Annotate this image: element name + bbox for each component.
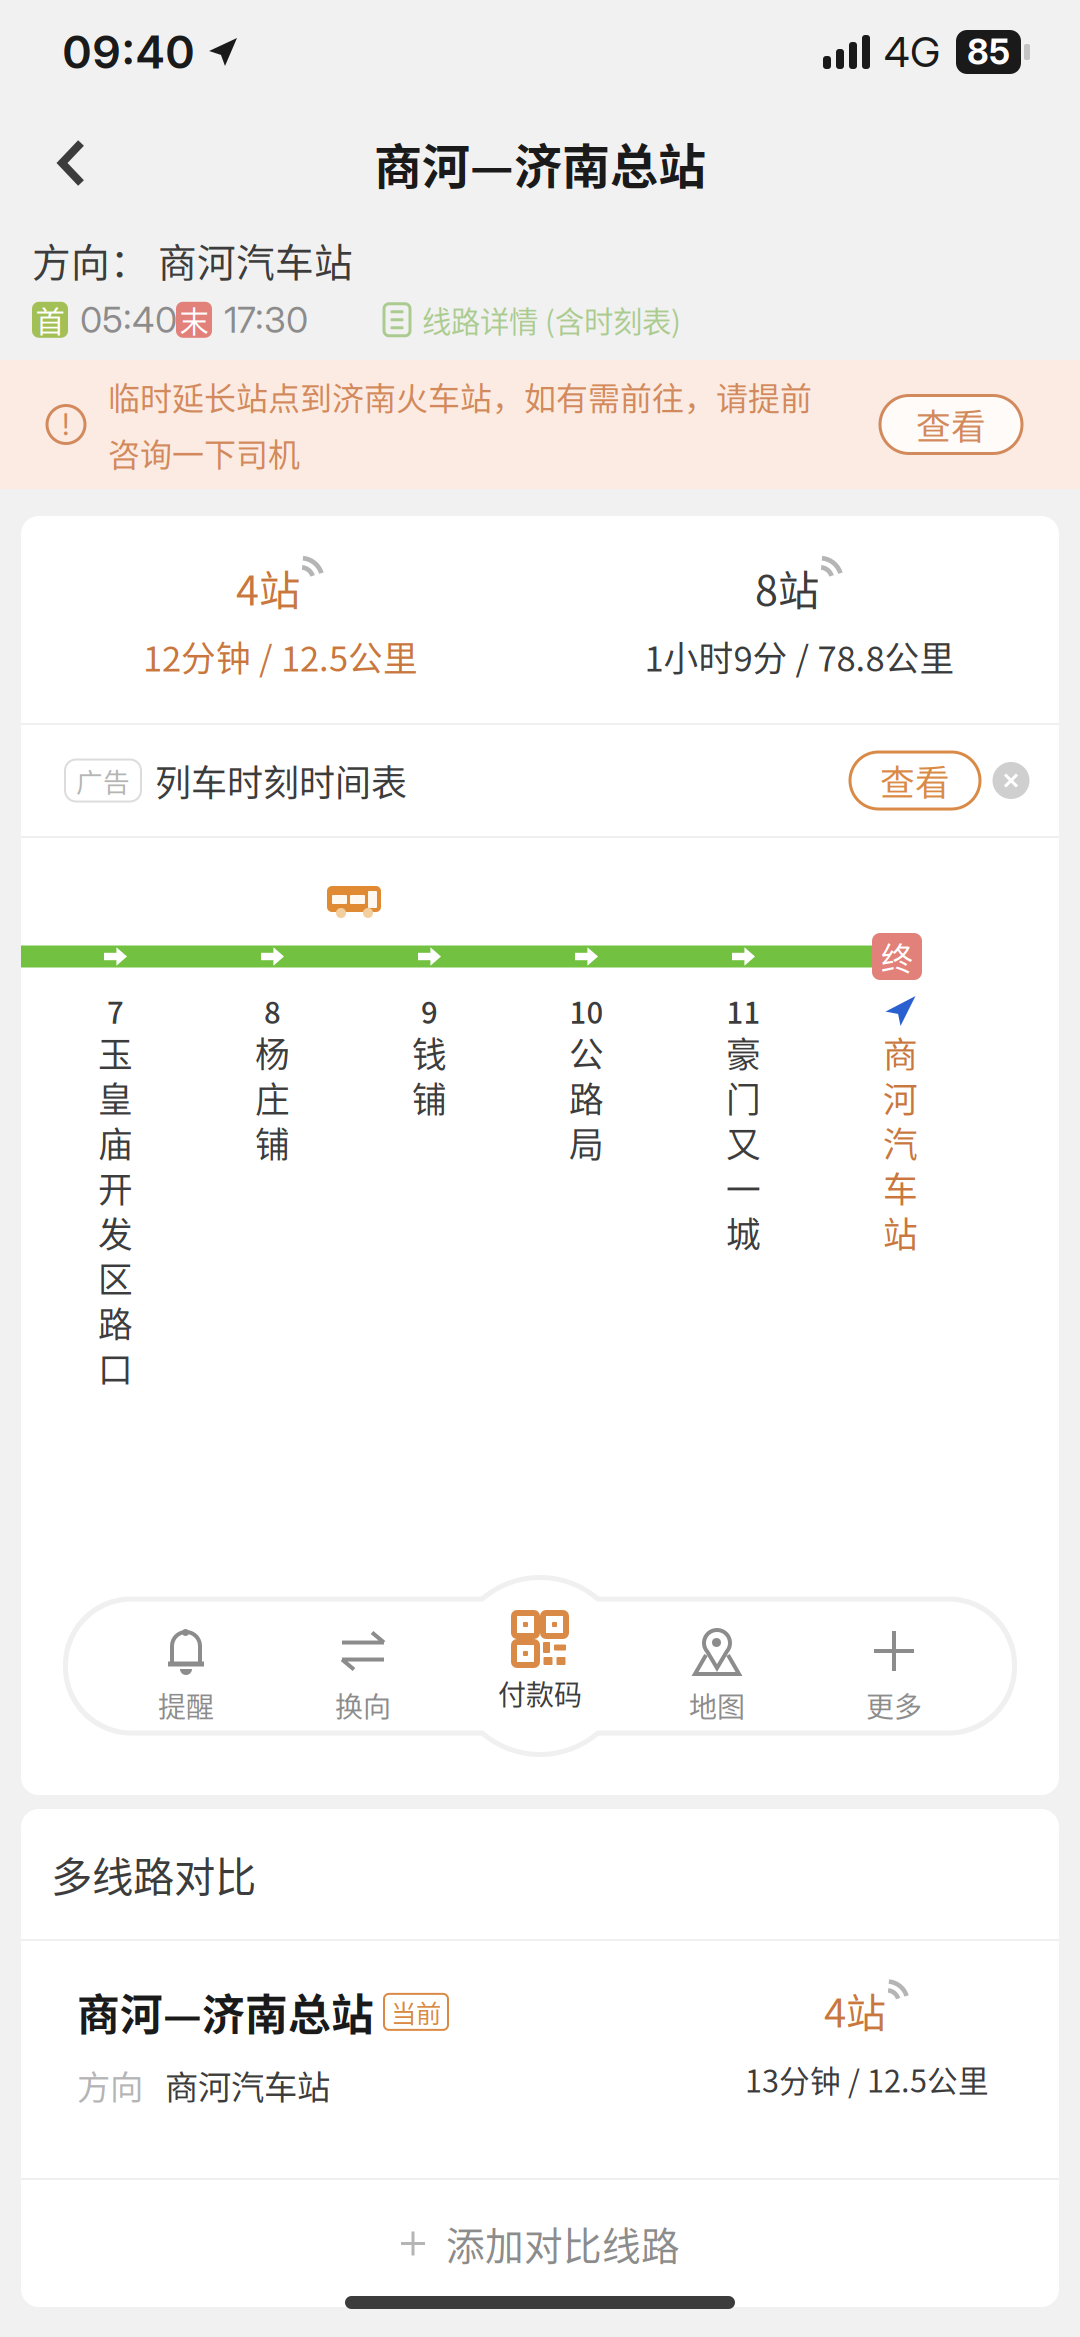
button[interactable]: 付款码: [451, 1575, 628, 1735]
staticText: 4站: [824, 1981, 886, 2039]
staticText: 发: [98, 1207, 133, 1258]
staticText: 1小时9分 / 78.8公里: [644, 631, 954, 681]
staticText: 钱: [412, 1027, 447, 1078]
staticText: 方向: [77, 2061, 143, 2109]
staticText: 7: [107, 990, 124, 1032]
staticText: 路: [98, 1297, 133, 1348]
staticText: 换向: [335, 1685, 391, 1725]
button[interactable]: 查看: [880, 395, 1022, 453]
staticText: 商河—济南总站: [374, 128, 706, 198]
button[interactable]: 地图: [628, 1575, 805, 1735]
staticText: 列车时刻时间表: [155, 754, 407, 806]
staticText: 路: [569, 1072, 604, 1123]
staticText: 商河—济南总站: [77, 1981, 374, 2043]
staticText: 地图: [689, 1685, 745, 1725]
staticText: 商: [883, 1027, 918, 1078]
staticText: 咨询一下司机: [108, 429, 300, 476]
button[interactable]: 4站: [21, 516, 540, 723]
staticText: 广告: [76, 761, 130, 800]
staticText: 皇: [98, 1072, 133, 1123]
staticText: 查看: [880, 755, 950, 806]
staticText: 一: [726, 1162, 761, 1213]
staticText: 口: [98, 1342, 133, 1393]
staticText: 8站: [755, 557, 819, 617]
staticText: 终: [881, 933, 913, 980]
staticText: 门: [726, 1072, 761, 1123]
staticText: 区: [98, 1252, 133, 1303]
button[interactable]: 换向: [274, 1575, 451, 1735]
staticText: 临时延长站点到济南火车站，如有需前往，请提前: [108, 373, 812, 419]
staticText: 豪: [726, 1027, 761, 1078]
staticText: 12分钟 / 12.5公里: [143, 631, 418, 681]
staticText: 9: [421, 990, 438, 1032]
staticText: 铺: [255, 1117, 290, 1168]
button[interactable]: 8站: [540, 516, 1059, 723]
staticText: 首: [35, 298, 64, 341]
button[interactable]: 返回: [0, 114, 125, 212]
staticText: 05:40: [80, 298, 177, 342]
button[interactable]: 查看: [850, 752, 980, 809]
staticText: 8: [264, 990, 281, 1032]
staticText: 局: [569, 1117, 604, 1168]
staticText: 车: [883, 1162, 918, 1213]
staticText: 公: [569, 1027, 604, 1078]
staticText: 庙: [98, 1117, 133, 1168]
staticText: 杨: [255, 1027, 290, 1078]
staticText: 汽: [883, 1117, 918, 1168]
staticText: 庄: [255, 1072, 290, 1123]
staticText: 开: [98, 1162, 133, 1213]
staticText: 商河汽车站: [165, 2061, 330, 2109]
staticText: 更多: [866, 1685, 922, 1725]
staticText: 多线路对比: [51, 1844, 256, 1904]
button[interactable]: 添加对比线路: [21, 2180, 1059, 2307]
staticText: 85: [967, 31, 1010, 73]
staticText: 方向： 商河汽车站: [32, 232, 353, 288]
staticText: 查看: [916, 399, 986, 450]
staticText: 09:40: [62, 25, 195, 79]
staticText: 河: [883, 1072, 918, 1123]
button[interactable]: 更多: [805, 1575, 982, 1735]
staticText: 10: [569, 990, 603, 1032]
staticText: 玉: [98, 1027, 133, 1078]
button[interactable]: 商河—济南总站: [21, 1941, 1059, 2178]
staticText: 17:30: [224, 298, 308, 342]
staticText: 13分钟 / 12.5公里: [745, 2057, 989, 2101]
staticText: 末: [179, 298, 208, 341]
staticText: 当前: [391, 1993, 441, 2030]
button[interactable]: 关闭广告: [986, 755, 1036, 805]
staticText: 付款码: [498, 1673, 582, 1713]
staticText: 4站: [236, 557, 300, 617]
staticText: 又: [726, 1117, 761, 1168]
button[interactable]: 提醒: [97, 1575, 274, 1735]
staticText: 4G: [884, 27, 940, 77]
staticText: 线路详情 (含时刻表): [422, 298, 681, 341]
staticText: 城: [726, 1207, 761, 1258]
staticText: 铺: [412, 1072, 447, 1123]
staticText: 11: [726, 990, 760, 1032]
staticText: 添加对比线路: [446, 2215, 680, 2271]
button[interactable]: 线路详情 (含时刻表): [380, 298, 681, 341]
staticText: 提醒: [158, 1685, 214, 1725]
staticText: 站: [883, 1207, 918, 1258]
staticText: !: [62, 407, 70, 442]
